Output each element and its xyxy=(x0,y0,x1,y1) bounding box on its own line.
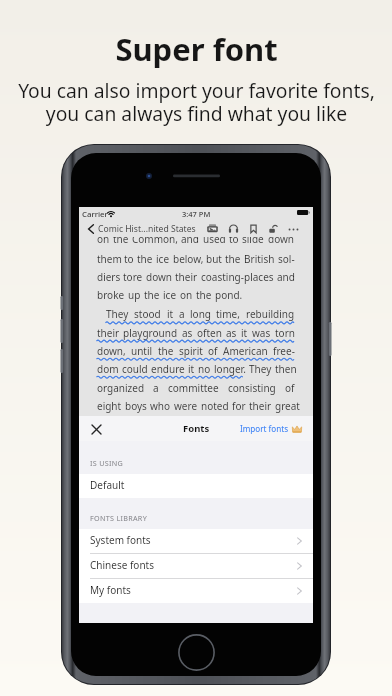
staticText: diers xyxy=(97,270,121,284)
staticText: their xyxy=(249,399,272,413)
staticText: but xyxy=(206,252,222,266)
staticText: of xyxy=(208,344,218,358)
button[interactable]: Comic Hist...nited States xyxy=(79,221,200,237)
staticText: Import fonts xyxy=(240,423,289,434)
staticText: who xyxy=(150,399,171,413)
staticText: down xyxy=(268,232,295,246)
staticText: noted xyxy=(201,399,229,413)
staticText: Carrier xyxy=(82,209,108,220)
staticText: My fonts xyxy=(90,583,131,597)
staticText: of xyxy=(285,381,295,395)
staticText: down xyxy=(146,270,173,284)
staticText: IS USING xyxy=(90,458,123,468)
staticText: up xyxy=(128,288,141,302)
staticText: were xyxy=(174,399,198,413)
button[interactable]: Close xyxy=(85,418,107,440)
button[interactable]: Import fonts xyxy=(234,419,313,438)
staticText: the xyxy=(137,252,153,266)
staticText: long xyxy=(190,307,211,321)
staticText: it xyxy=(241,326,248,340)
staticText: longer. xyxy=(214,362,246,376)
staticText: the xyxy=(144,288,160,302)
staticText: time, xyxy=(216,307,240,321)
staticText: for xyxy=(232,399,246,413)
staticText: Fonts xyxy=(183,422,210,435)
staticText: a xyxy=(179,307,185,321)
staticText: They xyxy=(249,362,272,376)
staticText: They xyxy=(106,307,129,321)
button[interactable]: Bookmark xyxy=(245,220,262,238)
staticText xyxy=(97,270,100,284)
staticText: ice xyxy=(156,252,170,266)
staticText: organized xyxy=(97,381,145,395)
button[interactable]: Images xyxy=(204,220,221,238)
staticText: then xyxy=(275,362,297,376)
staticText xyxy=(97,399,100,413)
button[interactable]: Chinese fonts xyxy=(79,554,313,578)
staticText: a xyxy=(153,381,159,395)
staticText: 3:47 PM xyxy=(182,209,211,219)
button[interactable]: Lock xyxy=(265,220,282,238)
staticText: the xyxy=(196,288,212,302)
staticText: free- xyxy=(273,344,295,358)
staticText: as xyxy=(182,326,193,340)
staticText xyxy=(97,326,100,340)
staticText: to xyxy=(124,252,134,266)
staticText: no xyxy=(198,362,211,376)
staticText: and xyxy=(277,270,295,284)
staticText: could xyxy=(122,362,148,376)
button[interactable]: My fonts xyxy=(79,579,313,603)
staticText xyxy=(97,344,100,358)
staticText: dom xyxy=(97,362,119,376)
staticText: their xyxy=(97,326,120,340)
staticText: British xyxy=(244,252,275,266)
staticText xyxy=(97,362,100,376)
staticText xyxy=(97,232,100,246)
staticText: eight xyxy=(97,399,122,413)
staticText: playground xyxy=(123,326,178,340)
staticText xyxy=(97,252,100,266)
staticText: committee xyxy=(168,381,219,395)
staticText: endure xyxy=(151,362,185,376)
staticText: Super font xyxy=(115,28,278,70)
staticText: down, xyxy=(97,344,126,358)
button[interactable]: Audio xyxy=(225,220,242,238)
staticText: to xyxy=(229,232,239,246)
staticText: consisting xyxy=(228,381,276,395)
staticText: rebuilding xyxy=(246,307,295,321)
staticText: the xyxy=(225,252,241,266)
staticText: You can also import your favorite fonts,… xyxy=(18,77,375,127)
button[interactable]: Default xyxy=(79,474,313,498)
button[interactable]: More xyxy=(285,220,302,238)
staticText: ice xyxy=(163,288,177,302)
staticText: below, xyxy=(173,252,204,266)
staticText: was xyxy=(252,326,271,340)
staticText: boys xyxy=(125,399,147,413)
staticText: them xyxy=(97,252,122,266)
staticText: stood xyxy=(134,307,161,321)
staticText: often xyxy=(197,326,222,340)
staticText: broke xyxy=(97,288,125,302)
staticText: coasting-places xyxy=(201,270,274,284)
staticText: the xyxy=(113,232,129,246)
button[interactable]: System fonts xyxy=(79,529,313,553)
staticText: tore xyxy=(123,270,143,284)
staticText xyxy=(97,381,100,395)
staticText: American xyxy=(223,344,268,358)
staticText xyxy=(97,288,100,302)
staticText: great xyxy=(275,399,300,413)
staticText: Default xyxy=(90,478,125,492)
staticText: it xyxy=(167,307,174,321)
staticText: spirit xyxy=(179,344,203,358)
staticText: Chinese fonts xyxy=(90,558,154,572)
staticText: System fonts xyxy=(90,533,151,547)
staticText: pond. xyxy=(215,288,243,302)
staticText: until xyxy=(131,344,153,358)
staticText: as xyxy=(226,326,237,340)
staticText: on xyxy=(97,232,110,246)
staticText: the xyxy=(158,344,174,358)
staticText: Comic Hist...nited States xyxy=(98,223,196,235)
staticText: FONTS LIBRARY xyxy=(90,513,147,523)
staticText: their xyxy=(175,270,198,284)
